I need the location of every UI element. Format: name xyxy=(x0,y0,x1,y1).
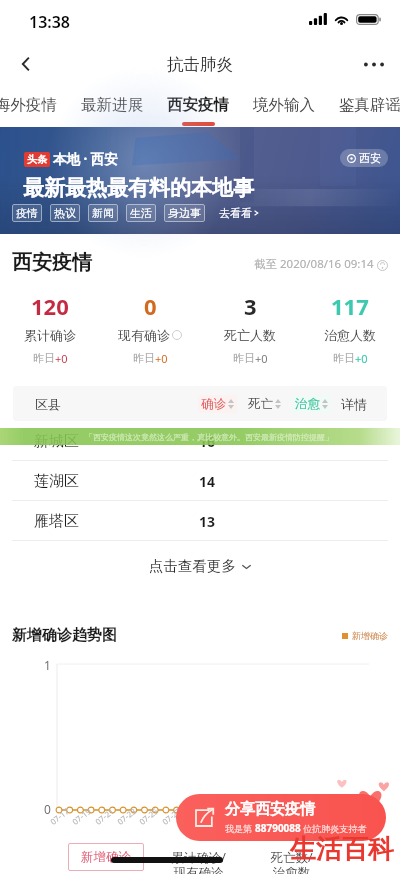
button[interactable]: 头条 xyxy=(0,127,400,234)
staticText: 14 xyxy=(199,472,216,491)
staticText: 截至 2020/08/16 09:14 xyxy=(254,256,374,272)
staticText: 07-21 xyxy=(93,805,116,827)
staticText: 13:38 xyxy=(29,11,71,33)
staticText: 16 xyxy=(199,432,216,451)
button[interactable]: More options xyxy=(354,44,394,84)
staticText: 确诊 xyxy=(201,396,226,412)
staticText: 120 xyxy=(31,291,69,321)
staticText: 最新最热最有料的本地事 xyxy=(23,175,254,201)
staticText: 13 xyxy=(199,512,216,531)
staticText: 新增确诊 xyxy=(81,849,131,865)
staticText: 本地 · 西安 xyxy=(53,150,118,168)
button[interactable]: 0 xyxy=(100,291,200,366)
staticText: 累计确诊 xyxy=(24,327,76,343)
button[interactable]: 热议 xyxy=(50,204,80,222)
button[interactable]: 确诊 xyxy=(198,395,237,413)
button[interactable]: 分享西安疫情 xyxy=(176,794,386,841)
staticText: 死亡 xyxy=(248,396,273,412)
staticText: 境外输入 xyxy=(253,95,315,115)
staticText: 「西安疫情这次竟然这么严重，真比较意外。西安最新疫情防控提醒」 xyxy=(85,432,333,442)
staticText: 头条 xyxy=(27,153,47,166)
button[interactable]: 117 xyxy=(300,291,400,366)
staticText: 07-17 xyxy=(48,805,71,827)
staticText: 0 xyxy=(144,291,157,321)
button[interactable]: 120 xyxy=(0,291,100,366)
staticText: 08-06 xyxy=(271,805,294,827)
staticText: 死亡人数 xyxy=(224,327,276,343)
staticText: 海外疫情 xyxy=(0,95,57,115)
staticText: 3 xyxy=(244,291,257,321)
button[interactable]: 生活 xyxy=(126,204,156,222)
button[interactable]: 新闻 xyxy=(88,204,118,222)
staticText: 区县 xyxy=(35,396,61,412)
button[interactable]: 死亡 xyxy=(245,395,284,413)
staticText: 88790088 xyxy=(255,821,301,835)
staticText: 雁塔区 xyxy=(34,512,79,531)
staticText: 治愈 xyxy=(295,396,320,412)
staticText: 我是第 xyxy=(225,822,255,834)
button[interactable]: 累计确诊/ 现有确诊 xyxy=(158,843,239,874)
button[interactable]: 治愈 xyxy=(292,395,331,413)
staticText: +0 xyxy=(155,351,168,366)
staticText: 点击查看更多 xyxy=(149,557,236,575)
button[interactable]: 疫情 xyxy=(12,204,42,222)
staticText: 07-25 xyxy=(137,805,160,827)
staticText: 08-04 xyxy=(249,805,272,827)
staticText: 位抗肺炎支持者 xyxy=(301,822,367,834)
button[interactable]: Info xyxy=(377,260,388,271)
button[interactable]: 去看看 xyxy=(219,206,260,220)
button[interactable]: 境外输入 xyxy=(251,84,317,127)
staticText: 死亡数/ 治愈数 xyxy=(270,849,313,874)
staticText: 西安疫情 xyxy=(12,250,92,275)
button[interactable]: 莲湖区 xyxy=(0,461,400,501)
button[interactable]: 西安 xyxy=(340,149,388,167)
button[interactable]: 雁塔区 xyxy=(0,501,400,541)
staticText: 鉴真辟谣 xyxy=(339,95,400,115)
staticText: 分享西安疫情 xyxy=(225,800,315,819)
staticText: 08-12 xyxy=(338,805,361,827)
button[interactable]: 鉴真辟谣 xyxy=(337,84,400,127)
staticText: 08-14 xyxy=(360,805,383,827)
staticText: +0 xyxy=(255,351,268,366)
button[interactable]: 3 xyxy=(200,291,300,366)
button[interactable]: 新增确诊 xyxy=(68,843,144,871)
staticText: 疫情 xyxy=(16,206,38,220)
staticText: 昨日 xyxy=(133,351,155,365)
staticText: 西安 xyxy=(359,151,381,165)
staticText: 117 xyxy=(331,291,369,321)
button[interactable]: 海外疫情 xyxy=(0,84,59,127)
staticText: 新增确诊趋势图 xyxy=(12,626,117,645)
button[interactable]: 最新进展 xyxy=(79,84,145,127)
staticText: +0 xyxy=(55,351,68,366)
staticText: 详情 xyxy=(341,396,367,412)
staticText: 生活 xyxy=(130,206,152,220)
staticText: 07-31 xyxy=(204,805,227,827)
button[interactable]: 点击查看更多 xyxy=(0,541,400,591)
staticText: 生活百科 xyxy=(290,833,394,866)
staticText: 西安疫情 xyxy=(167,95,229,115)
staticText: +0 xyxy=(355,351,368,366)
staticText: 08-02 xyxy=(226,805,249,827)
staticText: 莲湖区 xyxy=(34,472,79,491)
staticText: 最新进展 xyxy=(81,95,143,115)
staticText: 07-27 xyxy=(160,805,183,827)
staticText: 新闻 xyxy=(92,206,114,220)
staticText: 07-29 xyxy=(182,805,205,827)
staticText: 08-10 xyxy=(316,805,339,827)
button[interactable]: 新城区 xyxy=(0,421,400,461)
staticText: 热议 xyxy=(54,206,76,220)
button[interactable]: 身边事 xyxy=(164,204,205,222)
button[interactable]: 死亡数/ 治愈数 xyxy=(257,843,326,874)
staticText: 07-23 xyxy=(115,805,138,827)
button[interactable]: Back xyxy=(6,44,46,84)
staticText: 治愈人数 xyxy=(324,327,376,343)
staticText: 新增确诊 xyxy=(352,630,388,641)
staticText: 0 xyxy=(44,801,51,817)
staticText: 去看看 xyxy=(219,206,252,220)
button[interactable]: 西安疫情 xyxy=(165,84,231,127)
staticText: 抗击肺炎 xyxy=(167,54,233,75)
staticText: 昨日 xyxy=(33,351,55,365)
staticText: 1 xyxy=(44,657,51,673)
staticText: 昨日 xyxy=(233,351,255,365)
staticText: 新城区 xyxy=(34,432,79,451)
